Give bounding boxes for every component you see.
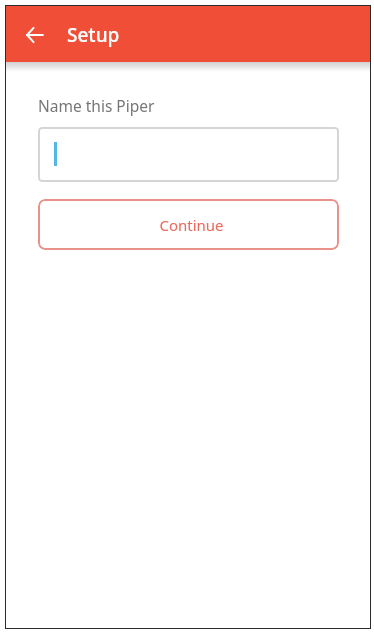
staticText: Setup [67, 22, 120, 48]
button[interactable]: Back [15, 15, 55, 55]
staticText: Name this Piper [38, 95, 155, 116]
button[interactable] [38, 127, 339, 182]
staticText: Continue [159, 215, 224, 235]
button[interactable]: Continue [38, 199, 339, 250]
